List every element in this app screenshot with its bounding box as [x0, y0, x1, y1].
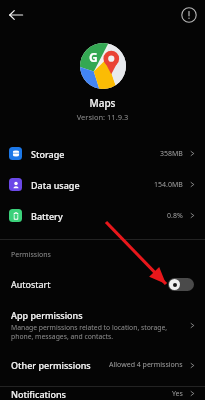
- staticText: 154.0MB: [154, 180, 183, 190]
- button[interactable]: Back: [5, 4, 27, 26]
- staticText: Permissions: [11, 250, 51, 260]
- staticText: Data usage: [31, 179, 154, 191]
- button[interactable]: Notifications: [0, 387, 205, 400]
- staticText: Maps: [0, 96, 205, 110]
- staticText: Version: 11.9.3: [0, 112, 205, 122]
- staticText: Storage: [31, 148, 160, 160]
- staticText: G: [89, 49, 98, 65]
- button[interactable]: Battery: [0, 200, 205, 231]
- staticText: 0.8%: [167, 211, 183, 221]
- staticText: Autostart: [11, 278, 168, 290]
- staticText: Yes: [172, 389, 183, 399]
- staticText: 358MB: [160, 149, 183, 159]
- button[interactable]: App permissions: [0, 306, 205, 344]
- staticText: Notifications: [11, 388, 172, 400]
- staticText: Other permissions: [11, 359, 109, 371]
- button[interactable]: App info: [179, 5, 199, 25]
- staticText: Battery: [31, 210, 167, 222]
- staticText: Manage permissions related to location, …: [11, 323, 168, 341]
- button[interactable]: Other permissions: [0, 354, 205, 376]
- button[interactable]: Autostart: [0, 270, 205, 298]
- staticText: App permissions: [11, 309, 83, 321]
- staticText: Allowed 4 permissions: [109, 360, 183, 370]
- button[interactable]: Data usage: [0, 169, 205, 200]
- button[interactable]: Storage: [0, 138, 205, 169]
- other: Autostart toggle: [168, 278, 194, 291]
